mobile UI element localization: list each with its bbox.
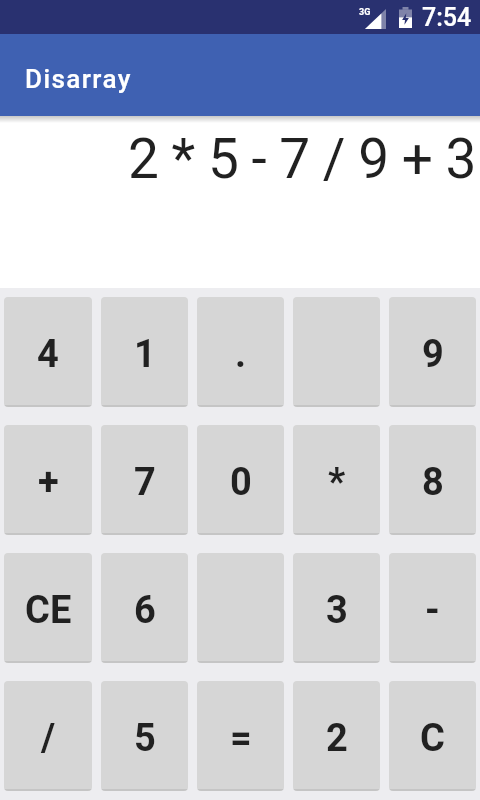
staticText: 2 * 5 - 7 / 9 + 3 (128, 127, 476, 191)
button[interactable]: 3 (293, 553, 380, 663)
staticText: 7 (134, 460, 156, 505)
button[interactable]: 8 (389, 425, 476, 535)
staticText: 4 (37, 332, 59, 377)
button[interactable]: 0 (197, 425, 284, 535)
staticText: + (38, 460, 59, 505)
staticText: * (328, 460, 346, 505)
staticText: 9 (422, 332, 444, 377)
staticText: / (41, 716, 56, 761)
button[interactable]: + (4, 425, 92, 535)
button[interactable]: 1 (101, 297, 188, 407)
staticText: = (230, 716, 252, 761)
staticText: 2 (326, 716, 348, 761)
button[interactable]: 5 (101, 681, 188, 791)
button[interactable]: * (293, 425, 380, 535)
staticText: 3 (326, 588, 348, 633)
button[interactable]: 2 (293, 681, 380, 791)
staticText: 1 (134, 332, 156, 377)
button[interactable]: 9 (389, 297, 476, 407)
staticText: 3G (359, 7, 371, 18)
staticText: 0 (230, 460, 252, 505)
staticText: . (235, 332, 247, 377)
button[interactable]: - (389, 553, 476, 663)
button[interactable]: = (197, 681, 284, 791)
staticText: - (425, 588, 440, 633)
staticText: 6 (134, 588, 156, 633)
button[interactable]: 6 (101, 553, 188, 663)
staticText: 7:54 (422, 3, 472, 32)
button[interactable]: C (389, 681, 476, 791)
button[interactable]: 7 (101, 425, 188, 535)
staticText: C (420, 716, 445, 761)
button[interactable]: CE (4, 553, 92, 663)
button[interactable]: / (4, 681, 92, 791)
staticText: CE (25, 588, 72, 633)
button[interactable]: 4 (4, 297, 92, 407)
staticText: Disarray (25, 64, 132, 94)
button[interactable]: . (197, 297, 284, 407)
staticText: 5 (134, 716, 156, 761)
staticText: 8 (422, 460, 444, 505)
